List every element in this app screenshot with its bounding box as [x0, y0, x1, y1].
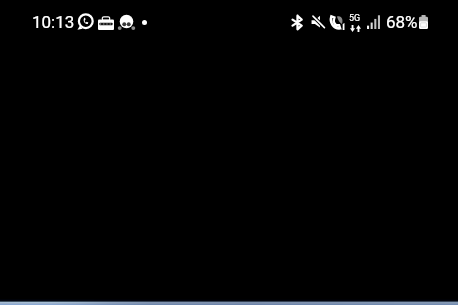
staticText: 68%	[386, 12, 418, 32]
staticText: 5G	[349, 13, 361, 24]
staticText: 10:13	[32, 12, 75, 32]
button[interactable]: Show player controls	[0, 0, 458, 305]
button[interactable]: Status bar, swipe down for quick setting…	[0, 0, 458, 44]
